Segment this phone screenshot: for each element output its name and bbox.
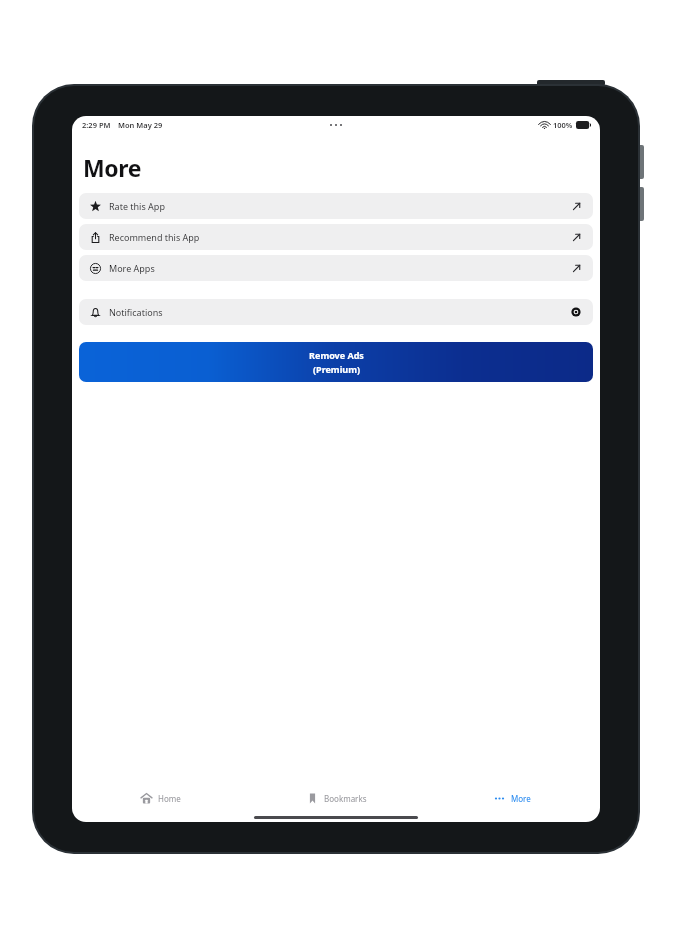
staticText: 2:29 PM	[82, 120, 111, 130]
other: Open	[569, 230, 583, 244]
staticText: (Premium)	[313, 363, 360, 375]
staticText: Recommend this App	[109, 231, 200, 243]
staticText: More Apps	[109, 262, 155, 274]
staticText: Bookmarks	[324, 793, 367, 804]
staticText: Notifications	[109, 306, 163, 318]
staticText: Mon May 29	[118, 120, 163, 130]
staticText: Home	[158, 793, 181, 804]
staticText: Remove Ads	[309, 349, 364, 361]
button[interactable]: Rate this App	[79, 193, 593, 219]
button[interactable]: Recommend this App	[79, 224, 593, 250]
button[interactable]: More Apps	[79, 255, 593, 281]
button[interactable]: Notifications	[79, 299, 593, 325]
staticText: Rate this App	[109, 200, 165, 212]
staticText: More	[83, 152, 142, 183]
button[interactable]: Remove Ads	[79, 342, 593, 382]
other: Notifications enabled	[569, 305, 583, 319]
staticText: 100%	[553, 120, 573, 130]
other: Open	[569, 261, 583, 275]
button[interactable]: Bookmarks	[248, 784, 424, 812]
staticText: More	[511, 793, 531, 804]
other: Open	[569, 199, 583, 213]
button[interactable]: More	[424, 784, 600, 812]
button[interactable]: Home	[72, 784, 248, 812]
